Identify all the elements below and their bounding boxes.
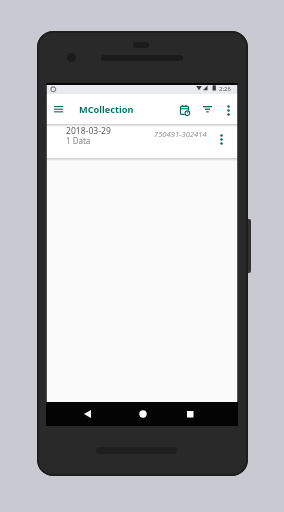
button[interactable] [128,402,157,426]
staticText: 2:26 [219,85,231,93]
button[interactable]: 2018-03-29 [46,124,238,158]
button[interactable] [196,98,219,121]
staticText: 750491-302414 [154,129,207,139]
staticText: 2018-03-29 [66,125,111,137]
button[interactable] [73,402,102,426]
button[interactable] [46,97,71,121]
button[interactable] [173,98,197,122]
button[interactable] [176,402,205,426]
button[interactable] [212,126,231,152]
button[interactable] [219,98,238,122]
staticText: MCollection [79,103,134,116]
staticText: 1 Data [66,135,91,146]
